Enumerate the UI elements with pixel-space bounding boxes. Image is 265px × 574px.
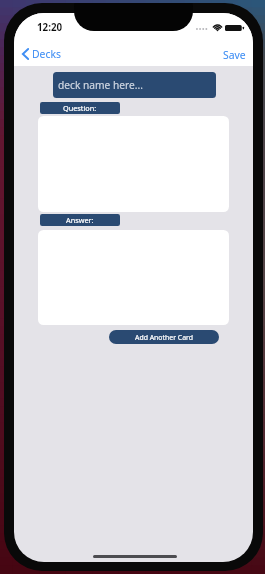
staticText: Add Another Card — [135, 333, 193, 342]
staticText: Answer: — [66, 215, 94, 225]
button[interactable]: Add Another Card — [109, 330, 219, 344]
staticText: Decks — [32, 47, 61, 61]
button[interactable]: deck name here... — [53, 72, 216, 98]
button[interactable]: Save — [215, 45, 253, 65]
staticText: Question: — [63, 103, 97, 113]
staticText: 12:20 — [37, 21, 63, 34]
staticText: Save — [223, 48, 246, 62]
staticText: deck name here... — [58, 78, 143, 92]
button[interactable]: Decks — [18, 45, 67, 63]
